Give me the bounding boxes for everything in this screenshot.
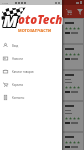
staticText: otoTech xyxy=(19,13,64,29)
staticText: otoTech xyxy=(18,12,63,28)
button[interactable]: Каталог товаров xyxy=(0,65,62,78)
button[interactable] xyxy=(63,102,83,131)
staticText: Каталог товаров xyxy=(12,70,34,74)
button[interactable]: Корзина xyxy=(0,78,62,91)
button[interactable]: Новости xyxy=(0,52,62,65)
staticText: M xyxy=(2,10,17,32)
staticText: 14:05 xyxy=(2,1,9,4)
staticText: otoTech xyxy=(18,12,63,28)
button[interactable] xyxy=(0,0,84,150)
staticText: Контакты xyxy=(12,96,25,100)
staticText: otoTech xyxy=(18,12,63,28)
staticText: Корзина xyxy=(12,83,23,87)
button[interactable] xyxy=(63,133,83,150)
staticText: M xyxy=(4,11,19,33)
staticText: Вход xyxy=(12,44,19,48)
staticText: M xyxy=(3,9,18,31)
staticText: otoTech xyxy=(19,12,64,28)
button[interactable]: Filter xyxy=(75,7,84,16)
staticText: Новости xyxy=(12,57,23,61)
staticText: M xyxy=(2,11,17,33)
staticText: M xyxy=(3,10,18,32)
staticText: МОТОЗАПЧАСТИ xyxy=(18,28,51,33)
staticText: M xyxy=(2,9,17,31)
staticText: M xyxy=(3,11,18,33)
button[interactable] xyxy=(63,71,83,100)
button[interactable] xyxy=(63,45,83,69)
button[interactable] xyxy=(63,19,83,43)
button[interactable]: Cart xyxy=(64,7,73,16)
staticText: otoTech xyxy=(18,12,63,28)
staticText: otoTech xyxy=(18,13,63,29)
staticText: M xyxy=(4,9,19,31)
button[interactable]: Контакты xyxy=(0,91,62,104)
staticText: otoTech xyxy=(19,12,64,28)
staticText: otoTech xyxy=(18,13,63,29)
button[interactable]: Вход xyxy=(0,39,62,52)
staticText: M xyxy=(4,10,19,32)
